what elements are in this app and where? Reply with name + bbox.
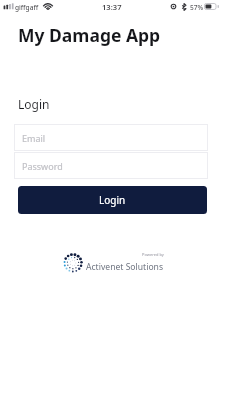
other: Battery 57 percent: [204, 3, 220, 10]
staticText: 57%: [190, 3, 204, 12]
other: Wi-Fi connected: [44, 3, 52, 10]
button[interactable]: Login: [18, 186, 207, 214]
staticText: Password: [22, 160, 63, 172]
other: Bluetooth on: [182, 3, 186, 11]
staticText: My Damage App: [18, 23, 161, 47]
other: Cellular signal strength: [0, 0, 225, 14]
staticText: giffgaff: [15, 3, 39, 12]
staticText: Login: [18, 96, 50, 112]
button[interactable]: Email: [14, 124, 208, 151]
staticText: 13:37: [102, 2, 122, 12]
button[interactable]: Password: [14, 152, 208, 179]
staticText: Login: [99, 193, 126, 207]
staticText: Powered by: [142, 252, 164, 257]
other: Location services: [171, 3, 176, 10]
staticText: Activenet Solutions: [86, 261, 164, 273]
other: Activenet Solutions logo: [61, 251, 85, 275]
staticText: Email: [22, 132, 46, 144]
